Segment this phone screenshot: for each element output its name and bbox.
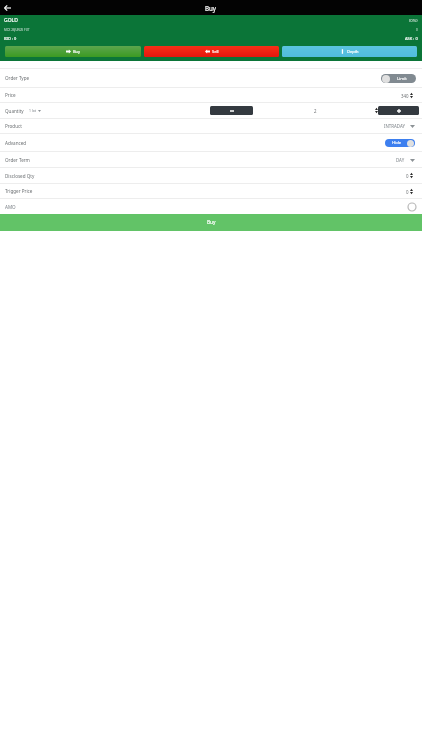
staticText: 0: [406, 173, 409, 179]
staticText: Quantity: [5, 108, 24, 114]
staticText: AMO: [5, 204, 16, 210]
staticText: DAY: [396, 157, 405, 163]
button[interactable]: 1 lot: [29, 108, 41, 113]
button[interactable]: Decrease quantity: [210, 106, 253, 115]
button[interactable]: Buy: [0, 214, 422, 231]
staticText: GOLD: [4, 17, 18, 24]
button[interactable]: Product: [0, 119, 422, 133]
staticText: Disclosed Qty: [5, 173, 35, 179]
staticText: 2: [314, 108, 317, 114]
staticText: Order Term: [5, 157, 30, 163]
staticText: 1 lot: [29, 108, 36, 113]
button[interactable]: Trigger Price: [0, 184, 422, 198]
staticText: Buy: [207, 219, 216, 226]
button[interactable]: Back: [1, 1, 14, 14]
button[interactable]: Price: [0, 88, 422, 102]
staticText: Limit: [397, 76, 407, 82]
staticText: Product: [5, 123, 22, 129]
staticText: Buy: [73, 49, 81, 54]
staticText: Depth: [347, 49, 359, 54]
staticText: Order Type: [5, 75, 30, 81]
staticText: MCX 26JUN25 FUT: [4, 28, 30, 32]
button[interactable]: Disclosed Qty: [0, 168, 422, 183]
staticText: BID : 0: [4, 36, 17, 41]
button[interactable]: Limit: [381, 74, 416, 83]
button[interactable]: Advanced: [0, 134, 422, 151]
staticText: Hide: [392, 140, 402, 146]
button[interactable]: Order Term: [0, 152, 422, 167]
staticText: ASK : 0: [405, 36, 418, 41]
staticText: Price: [5, 92, 16, 98]
staticText: (0%): [409, 18, 418, 24]
staticText: 340: [401, 93, 409, 99]
staticText: Trigger Price: [5, 188, 33, 194]
staticText: Advanced: [5, 140, 27, 146]
button[interactable]: Depth: [282, 46, 417, 57]
staticText: Buy: [205, 4, 217, 12]
staticText: 0: [416, 28, 418, 32]
button[interactable]: Hide: [385, 139, 415, 147]
button[interactable]: AMO: [0, 199, 422, 214]
button[interactable]: Increase quantity: [378, 106, 419, 115]
button[interactable]: Buy: [5, 46, 141, 57]
staticText: 0: [406, 189, 409, 195]
staticText: Sell: [212, 49, 219, 54]
button[interactable]: Sell: [144, 46, 279, 57]
button[interactable]: Order Type: [0, 69, 422, 87]
staticText: INTRADAY: [384, 123, 405, 129]
